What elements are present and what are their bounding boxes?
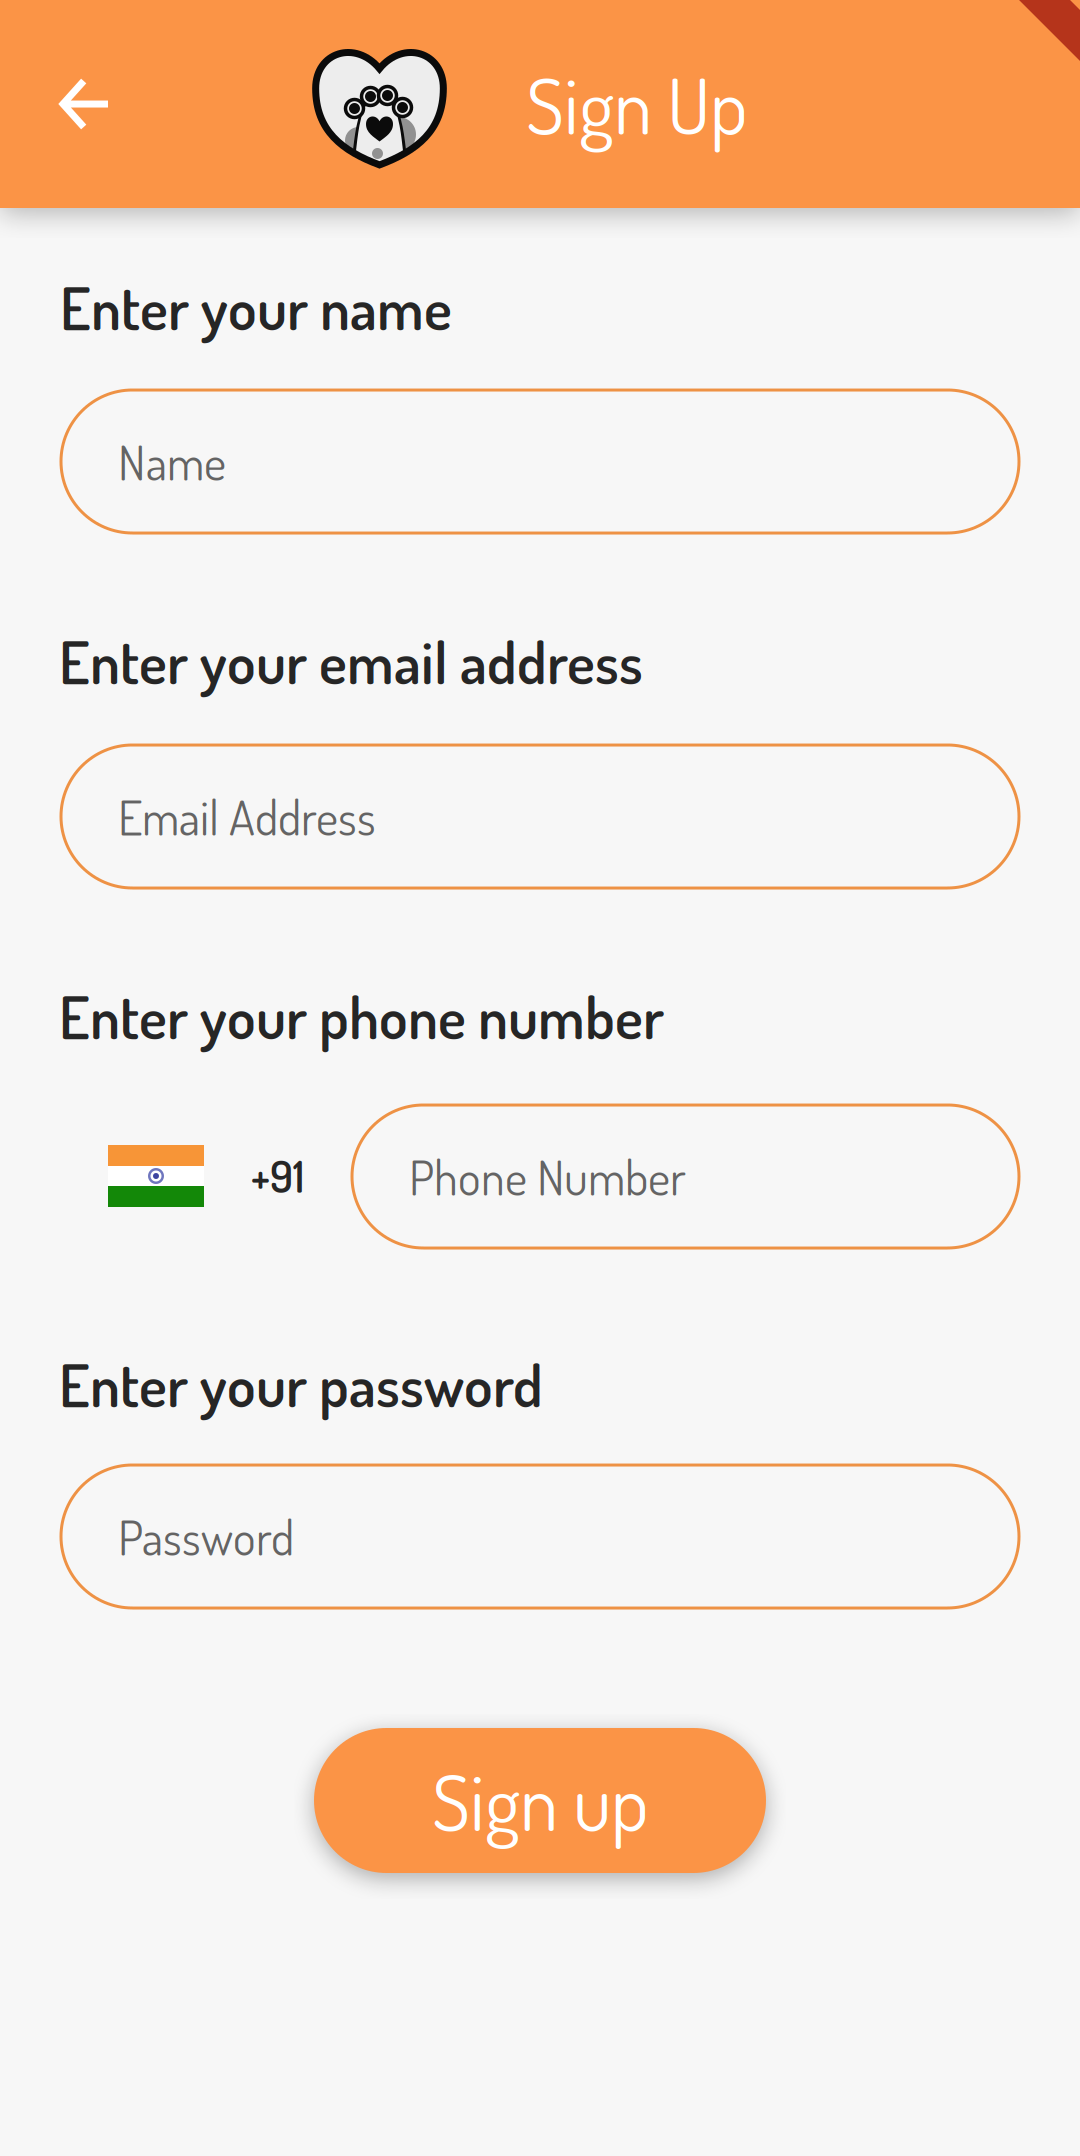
staticText: +91 <box>251 1149 304 1203</box>
staticText: Enter your password <box>59 1347 543 1421</box>
button[interactable]: Email Address <box>61 745 1019 888</box>
staticText: Sign Up <box>526 55 747 153</box>
staticText: Password <box>118 1506 294 1567</box>
staticText: Phone Number <box>409 1146 686 1207</box>
button[interactable]: Password <box>61 1465 1019 1608</box>
staticText: Enter your name <box>60 270 452 344</box>
staticText: Enter your email address <box>59 624 643 698</box>
staticText: Email Address <box>118 786 376 847</box>
staticText: Enter your phone number <box>59 979 664 1053</box>
button[interactable]: Name <box>61 390 1019 533</box>
button[interactable]: Sign up <box>314 1728 766 1873</box>
staticText: Sign up <box>432 1752 648 1849</box>
staticText: Name <box>118 431 226 492</box>
button[interactable]: Phone Number <box>352 1105 1019 1248</box>
button[interactable]: Back <box>29 47 142 161</box>
